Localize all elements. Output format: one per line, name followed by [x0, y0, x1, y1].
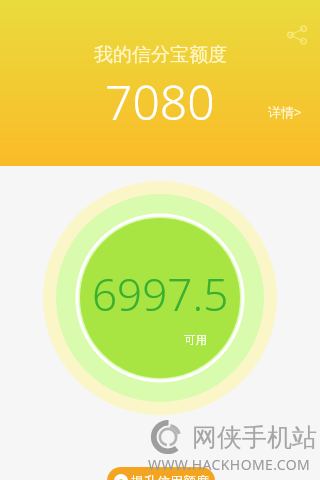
button[interactable]: 详情> — [264, 100, 306, 124]
button[interactable]: 提升信用额度 — [107, 467, 215, 480]
staticText: 详情> — [268, 103, 302, 121]
staticText: 提升信用额度 — [131, 473, 209, 480]
staticText: WWW.HACKHOME.COM — [148, 455, 311, 474]
staticText: 网侠手机站 — [192, 422, 317, 453]
staticText: 7080 — [105, 69, 215, 134]
staticText: 我的信分宝额度 — [94, 43, 227, 67]
staticText: 6997.5 — [92, 264, 229, 324]
staticText: 可用 — [184, 333, 207, 347]
button[interactable]: Share — [280, 18, 314, 52]
